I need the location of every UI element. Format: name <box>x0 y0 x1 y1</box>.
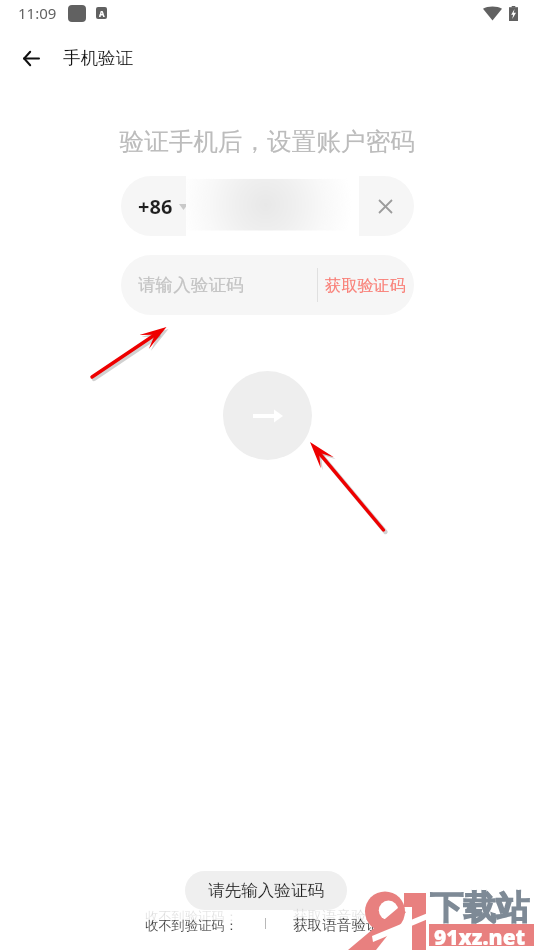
staticText: 91xz.net <box>434 923 526 945</box>
button[interactable]: +86 <box>138 193 188 220</box>
button[interactable]: Back <box>11 38 51 78</box>
staticText: 11:09 <box>18 3 57 23</box>
staticText: A <box>99 8 105 19</box>
button[interactable]: Next <box>223 371 312 460</box>
button[interactable]: Clear <box>370 191 400 221</box>
staticText: 获取语音验证码 <box>293 916 396 934</box>
staticText: 下载站 <box>430 887 529 929</box>
staticText: 请输入验证码 <box>138 274 244 296</box>
staticText: 收不到验证码： <box>145 908 239 925</box>
staticText: +86 <box>138 193 173 220</box>
staticText: 请先输入验证码 <box>208 880 325 901</box>
button[interactable]: 获取语音验证码 <box>293 914 396 936</box>
staticText: 手机验证 <box>63 47 133 69</box>
button[interactable]: 收不到验证码： <box>145 914 239 936</box>
staticText: 获取语音验证码 <box>293 907 396 925</box>
button[interactable]: 获取验证码 <box>317 255 414 315</box>
staticText: 收不到验证码： <box>145 917 239 934</box>
staticText: 获取验证码 <box>325 275 406 295</box>
staticText: 验证手机后，设置账户密码 <box>119 126 415 157</box>
